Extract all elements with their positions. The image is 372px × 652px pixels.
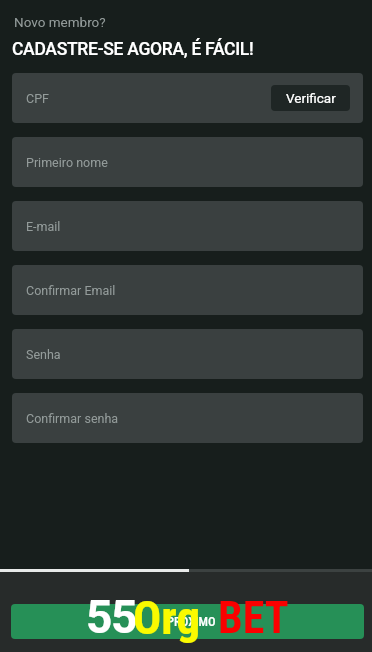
button[interactable]: Senha [12, 329, 363, 379]
button[interactable]: PRÓXIMO [11, 604, 364, 639]
staticText: CADASTRE-SE AGORA, É FÁCIL! [12, 39, 254, 60]
staticText: 55 [86, 590, 136, 644]
staticText: E-mail [26, 219, 61, 234]
staticText: Confirmar Email [26, 283, 116, 298]
staticText: CPF [26, 91, 49, 106]
button[interactable]: Confirmar senha [12, 393, 363, 443]
staticText: Novo membro? [14, 14, 106, 30]
staticText: Primeiro nome [26, 155, 108, 170]
staticText: PRÓXIMO [167, 614, 216, 629]
staticText: Verificar [286, 90, 336, 106]
staticText: Senha [26, 347, 61, 362]
button[interactable]: CPF [12, 73, 363, 123]
button[interactable]: E-mail [12, 201, 363, 251]
other: Progresso do cadastro [0, 569, 372, 572]
button[interactable]: Primeiro nome [12, 137, 363, 187]
staticText: Confirmar senha [26, 411, 119, 426]
staticText: BET [218, 592, 289, 644]
button[interactable]: Verificar [271, 85, 350, 111]
staticText: Org [133, 590, 201, 645]
button[interactable]: Confirmar Email [12, 265, 363, 315]
